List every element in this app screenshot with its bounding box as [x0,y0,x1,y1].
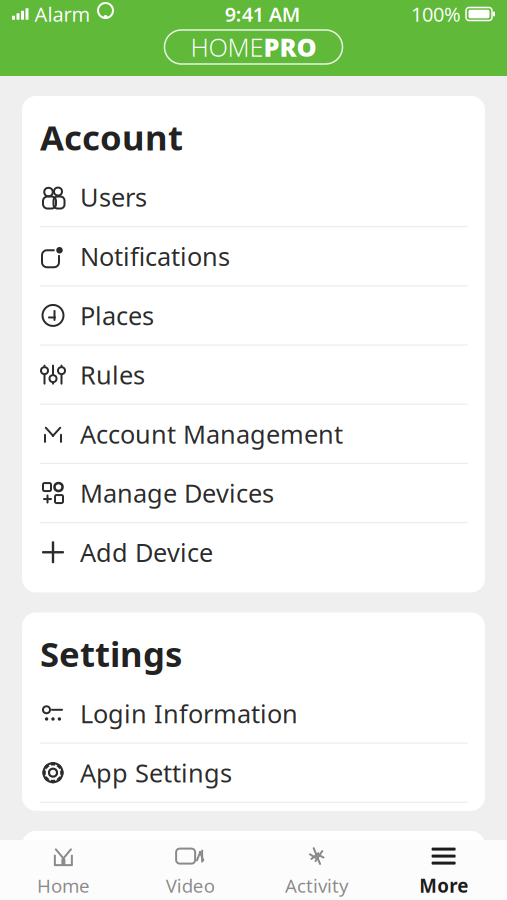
button[interactable]: More [380,836,507,900]
button[interactable]: Rules [22,346,485,405]
button[interactable]: Home [0,836,127,900]
staticText: Notifications [80,239,230,273]
staticText: Places [80,299,154,332]
staticText: Manage Devices [80,476,274,510]
staticText: Account Management [80,417,343,451]
button[interactable]: Places [22,286,485,346]
button[interactable]: Manage Devices [22,464,485,523]
button[interactable]: Video [127,836,254,900]
button[interactable]: Activity [253,836,380,900]
staticText: 9:41 AM [225,1,301,27]
staticText: PRO [263,30,316,64]
staticText: About [40,849,146,895]
staticText: More [419,873,468,898]
button[interactable]: Users [22,168,485,227]
staticText: Login Information [80,697,298,730]
staticText: Add Device [80,535,213,569]
staticText: Rules [80,358,145,391]
button[interactable]: Login Information [22,684,485,744]
staticText: Users [80,180,147,214]
staticText: Account [40,114,183,160]
button[interactable]: Notifications [22,227,485,286]
staticText: Alarm [34,1,90,27]
staticText: Home [37,873,90,898]
button[interactable]: Account Management [22,405,485,464]
staticText: App Settings [80,756,232,789]
staticText: 100% [411,1,461,27]
staticText: HOME [190,30,263,64]
staticText: Video [166,873,215,898]
staticText: Settings [40,630,182,676]
button[interactable]: App Settings [22,744,485,803]
button[interactable]: Add Device [22,523,485,582]
staticText: Activity [285,873,349,898]
button[interactable]: HomePro [164,30,342,64]
